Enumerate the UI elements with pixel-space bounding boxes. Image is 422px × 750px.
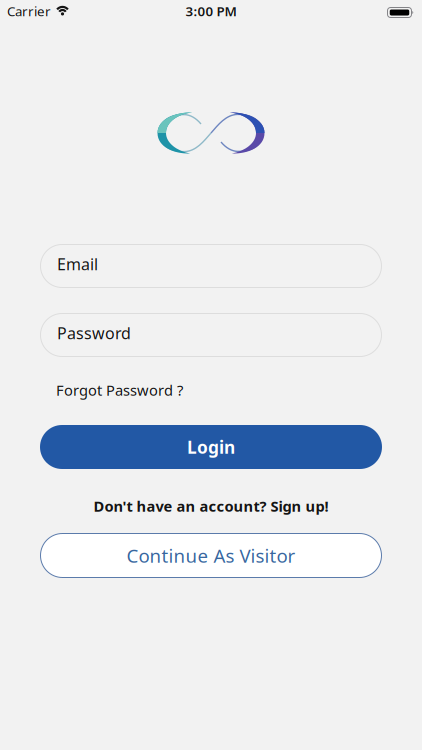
button[interactable]: Login	[40, 425, 382, 469]
button[interactable]: Email	[40, 244, 382, 288]
button[interactable]: Forgot Password ?	[56, 380, 183, 400]
staticText: Carrier	[7, 2, 51, 20]
button[interactable]: Continue As Visitor	[40, 533, 382, 578]
staticText: Email	[57, 253, 98, 275]
staticText: Forgot Password ?	[56, 380, 183, 400]
staticText: 3:00 PM	[185, 2, 236, 20]
staticText: Password	[57, 322, 131, 344]
staticText: Continue As Visitor	[126, 543, 295, 568]
button[interactable]: Don't have an account? Sign up!	[93, 496, 328, 516]
button[interactable]: Password	[40, 313, 382, 357]
staticText: Login	[187, 435, 235, 458]
staticText: Don't have an account? Sign up!	[93, 496, 328, 516]
